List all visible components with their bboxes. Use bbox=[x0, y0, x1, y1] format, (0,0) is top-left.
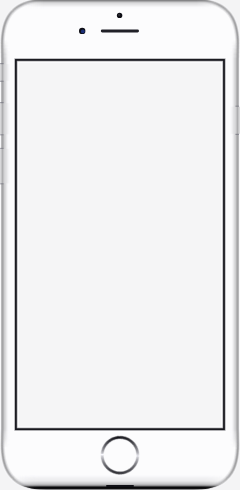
button[interactable]: Phone device mockup bbox=[0, 0, 240, 490]
